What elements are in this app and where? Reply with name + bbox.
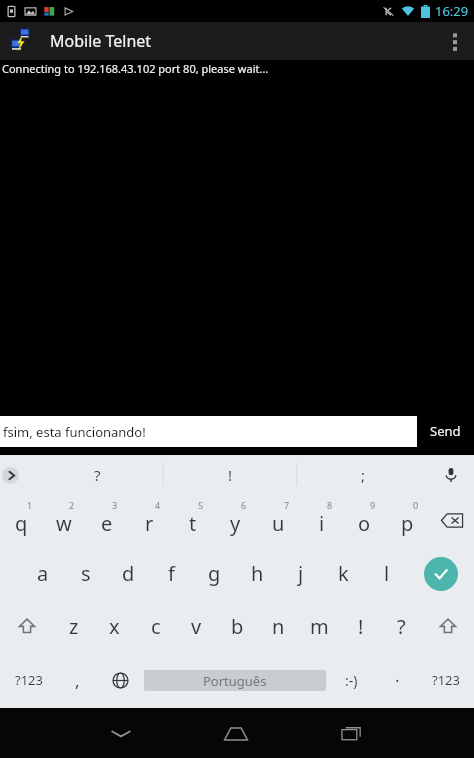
button[interactable]: fsim, esta funcionando! (0, 416, 417, 447)
staticText: r (145, 510, 154, 537)
staticText: c (151, 613, 161, 640)
button[interactable]: Change language (97, 652, 144, 708)
button[interactable]: f (150, 547, 193, 600)
button[interactable]: ? (30, 455, 164, 494)
button[interactable]: ? (381, 600, 422, 652)
button[interactable]: ! (340, 600, 381, 652)
button[interactable]: s (64, 547, 107, 600)
button[interactable]: Shift (0, 600, 53, 652)
button[interactable]: x (94, 600, 135, 652)
staticText: a (37, 560, 49, 587)
staticText: k (338, 560, 349, 587)
button[interactable]: a (21, 547, 64, 600)
button[interactable]: y (214, 494, 257, 547)
staticText: z (69, 613, 79, 640)
button[interactable]: Português (144, 652, 326, 708)
button[interactable]: j (279, 547, 322, 600)
button[interactable]: u (257, 494, 300, 547)
staticText: p (401, 510, 414, 537)
button[interactable]: z (53, 600, 94, 652)
staticText: , (75, 669, 80, 692)
staticText: y (230, 510, 241, 537)
button[interactable]: r (128, 494, 171, 547)
staticText: w (56, 510, 72, 537)
button[interactable]: b (217, 600, 258, 652)
button[interactable]: w (42, 494, 85, 547)
staticText: j (298, 560, 304, 587)
staticText: o (358, 510, 371, 537)
button[interactable]: ; (297, 455, 430, 494)
button[interactable]: q (0, 494, 42, 547)
staticText: s (81, 560, 91, 587)
button[interactable]: :-) (326, 652, 377, 708)
staticText: Connecting to 192.168.43.102 port 80, pl… (2, 61, 269, 76)
staticText: t (189, 510, 197, 537)
button[interactable]: v (176, 600, 217, 652)
button[interactable]: · (377, 652, 417, 708)
staticText: Send (430, 422, 461, 440)
staticText: Português (203, 672, 267, 690)
staticText: l (384, 560, 390, 587)
staticText: 3 (112, 499, 118, 511)
staticText: u (272, 510, 285, 537)
staticText: ; (361, 465, 366, 485)
staticText: ? (397, 613, 406, 640)
staticText: m (310, 613, 329, 640)
staticText: 6 (241, 499, 247, 511)
staticText: 2 (69, 499, 75, 511)
staticText: 16:29 (435, 2, 469, 20)
staticText: 7 (284, 499, 290, 511)
staticText: b (231, 613, 244, 640)
button[interactable]: d (107, 547, 150, 600)
staticText: 1 (27, 499, 33, 511)
button[interactable]: Backspace (429, 494, 474, 547)
button[interactable]: t (171, 494, 214, 547)
staticText: g (208, 560, 221, 587)
button[interactable]: c (135, 600, 176, 652)
staticText: Mobile Telnet (50, 30, 152, 52)
button[interactable]: ! (164, 455, 297, 494)
staticText: :-) (345, 671, 358, 690)
staticText: i (319, 510, 325, 537)
staticText: q (15, 510, 28, 537)
staticText: v (191, 613, 202, 640)
button[interactable]: Voice input (437, 461, 465, 489)
staticText: ! (358, 613, 364, 640)
button[interactable]: e (85, 494, 128, 547)
button[interactable]: i (300, 494, 343, 547)
staticText: x (109, 613, 120, 640)
button[interactable]: ?123 (0, 652, 57, 708)
staticText: h (251, 560, 264, 587)
button[interactable]: h (236, 547, 279, 600)
staticText: 9 (370, 499, 376, 511)
button[interactable]: Hide keyboard (63, 708, 178, 758)
staticText: 5 (198, 499, 204, 511)
button[interactable]: Recent apps (294, 708, 410, 758)
staticText: e (101, 510, 113, 537)
staticText: 0 (413, 499, 419, 511)
staticText: · (395, 669, 400, 692)
button[interactable]: o (343, 494, 386, 547)
button[interactable]: Home (178, 708, 294, 758)
button[interactable]: Shift (422, 600, 474, 652)
staticText: ?123 (15, 671, 43, 689)
button[interactable]: m (299, 600, 340, 652)
staticText: 8 (327, 499, 333, 511)
button[interactable]: More options (436, 22, 474, 60)
button[interactable]: k (322, 547, 365, 600)
button[interactable]: g (193, 547, 236, 600)
button[interactable]: , (57, 652, 97, 708)
button[interactable]: p (386, 494, 429, 547)
button[interactable]: ?123 (417, 652, 474, 708)
button[interactable]: Enter (408, 547, 474, 600)
staticText: 4 (155, 499, 161, 511)
button[interactable]: Send (417, 407, 474, 455)
staticText: fsim, esta funcionando! (3, 423, 146, 441)
button[interactable]: l (365, 547, 408, 600)
staticText: n (272, 613, 285, 640)
staticText: f (168, 560, 175, 587)
staticText: ? (94, 465, 101, 485)
button[interactable]: n (258, 600, 299, 652)
button[interactable]: Expand suggestions (0, 461, 28, 489)
staticText: d (122, 560, 135, 587)
